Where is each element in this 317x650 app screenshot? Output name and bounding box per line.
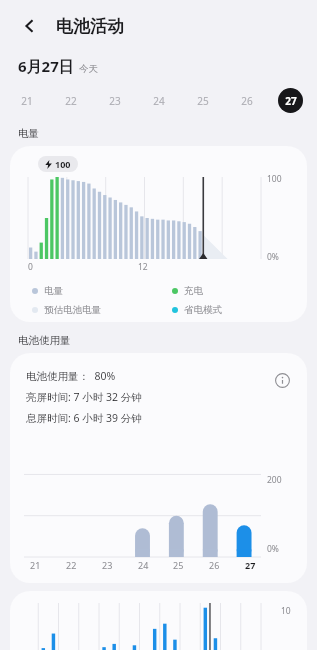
button[interactable]: 24 [146, 88, 171, 113]
staticText: 电量 [44, 285, 63, 297]
button[interactable]: 信息 [271, 369, 293, 391]
button[interactable]: 23 [102, 88, 127, 113]
staticText: 12 [138, 261, 148, 273]
staticText: 电池活动 [56, 16, 124, 37]
staticText: 27 [285, 94, 297, 108]
staticText: 100 [267, 173, 282, 185]
staticText: 10 [281, 605, 291, 617]
staticText: 省电模式 [184, 304, 222, 316]
staticText: 充电 [184, 285, 203, 297]
staticText: 24 [153, 94, 165, 108]
staticText: 26 [241, 94, 253, 108]
staticText: 25 [173, 559, 184, 571]
staticText: 22 [65, 94, 77, 108]
button[interactable]: 25 [190, 88, 215, 113]
staticText: 25 [197, 94, 209, 108]
staticText: 电池使用量 [18, 334, 71, 347]
staticText: 息屏时间: 6 小时 39 分钟 [26, 411, 142, 425]
staticText: 0 [28, 261, 33, 273]
button[interactable]: 100 [10, 146, 307, 322]
button[interactable]: 信息 [10, 353, 307, 583]
staticText: 0% [267, 251, 279, 263]
staticText: 电量 [18, 127, 39, 140]
staticText: 电池使用量： 80% [26, 369, 116, 383]
button[interactable]: 22 [58, 88, 83, 113]
staticText: 今天 [79, 63, 98, 75]
staticText: 亮屏时间: 7 小时 32 分钟 [26, 390, 142, 404]
staticText: 22 [66, 559, 77, 571]
staticText: 23 [102, 559, 113, 571]
staticText: 预估电池电量 [44, 304, 101, 316]
staticText: 23 [109, 94, 121, 108]
staticText: 200 [267, 474, 282, 486]
staticText: 0% [267, 543, 279, 555]
button[interactable]: 21 [14, 88, 39, 113]
button[interactable]: 10 [10, 591, 307, 650]
staticText: 21 [30, 559, 41, 571]
staticText: 24 [138, 559, 149, 571]
staticText: 21 [21, 94, 33, 108]
staticText: 27 [245, 559, 256, 571]
staticText: 26 [209, 559, 220, 571]
button[interactable]: 返回 [14, 10, 46, 42]
staticText: 100 [55, 158, 71, 170]
button[interactable]: 27 [278, 88, 303, 113]
button[interactable]: 26 [234, 88, 259, 113]
staticText: 6月27日 [18, 56, 74, 76]
